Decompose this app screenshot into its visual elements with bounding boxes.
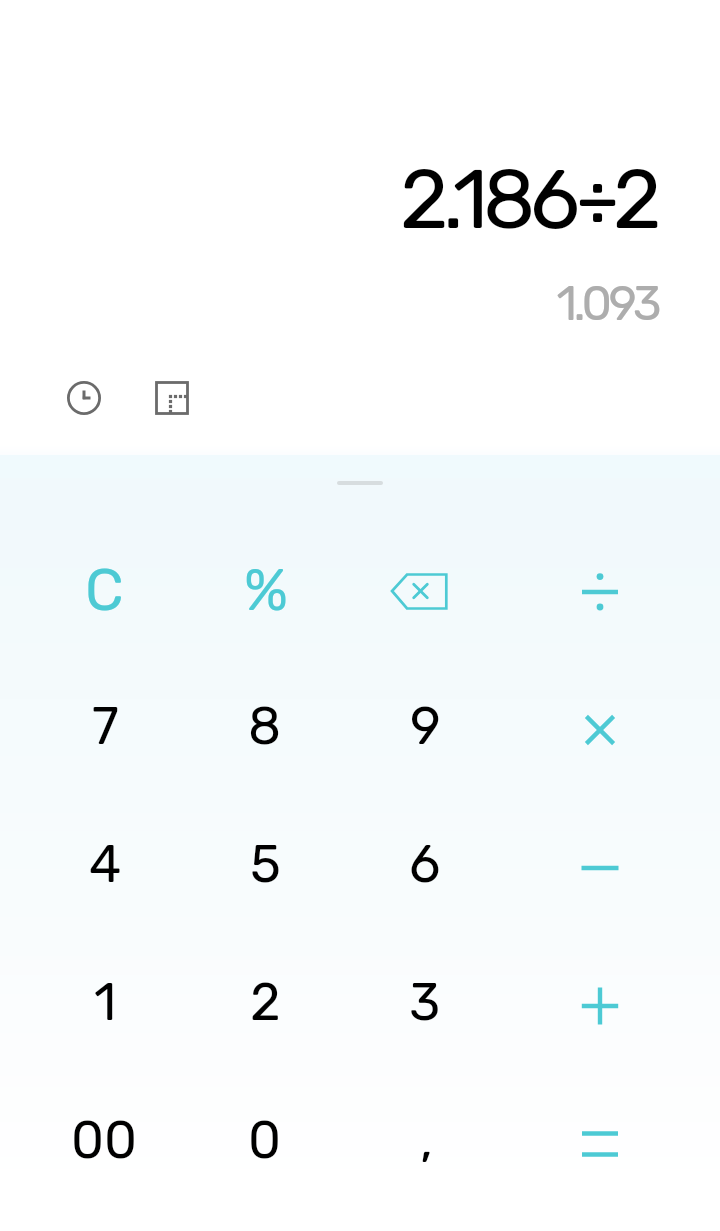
button[interactable]: % <box>181 524 351 656</box>
staticText: % <box>244 556 289 625</box>
staticText: 4 <box>89 833 122 895</box>
staticText: 00 <box>71 1109 138 1171</box>
staticText: 1.093 <box>556 275 658 332</box>
staticText: 5 <box>250 833 281 895</box>
button[interactable]: 0 <box>180 1074 350 1206</box>
button[interactable]: , <box>341 1074 511 1206</box>
staticText: 2.186÷2 <box>399 150 656 248</box>
button[interactable]: Backspace <box>340 526 510 658</box>
button[interactable]: Equals <box>515 1078 685 1210</box>
button[interactable]: Converter <box>144 370 200 426</box>
button[interactable]: Plus <box>515 940 685 1072</box>
staticText: C <box>85 556 124 625</box>
button[interactable]: Divide <box>515 526 685 658</box>
button[interactable]: 9 <box>340 660 510 792</box>
staticText: 0 <box>248 1109 282 1171</box>
button[interactable]: 4 <box>20 798 190 930</box>
button[interactable]: 2 <box>180 936 350 1068</box>
staticText: 6 <box>409 833 441 895</box>
button[interactable]: Minus <box>515 802 685 934</box>
staticText: 1 <box>94 971 117 1033</box>
staticText: 7 <box>92 695 119 757</box>
button[interactable]: 5 <box>180 798 350 930</box>
button[interactable]: Multiply <box>515 664 685 796</box>
button[interactable]: 7 <box>20 660 190 792</box>
staticText: 9 <box>410 695 441 757</box>
button[interactable]: 00 <box>19 1074 189 1206</box>
staticText: 8 <box>248 695 282 757</box>
button[interactable]: 6 <box>340 798 510 930</box>
staticText: 3 <box>409 971 441 1033</box>
button[interactable]: 3 <box>340 936 510 1068</box>
staticText: , <box>420 1109 433 1171</box>
button[interactable]: 8 <box>180 660 350 792</box>
button[interactable]: History <box>56 370 112 426</box>
button[interactable]: 1 <box>20 936 190 1068</box>
staticText: 2 <box>250 971 281 1033</box>
button[interactable]: C <box>19 524 189 656</box>
